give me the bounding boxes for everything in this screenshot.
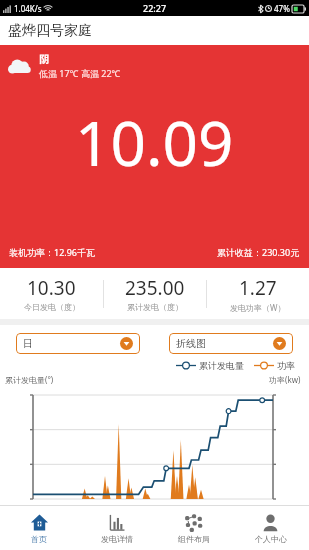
staticText: 发电详情 bbox=[101, 534, 133, 544]
staticText: 装机功率：12.96千瓦 bbox=[9, 246, 96, 258]
staticText: 累计发电量(°) bbox=[5, 374, 54, 385]
button[interactable]: 1.27 bbox=[207, 275, 309, 313]
staticText: 累计发电（度） bbox=[127, 302, 183, 312]
button[interactable]: 发电详情 bbox=[78, 506, 155, 550]
button[interactable]: 首页 bbox=[0, 506, 78, 550]
staticText: 组件布局 bbox=[178, 534, 210, 544]
staticText: 盛烨四号家庭 bbox=[8, 22, 92, 40]
staticText: 1.04K/s bbox=[14, 3, 42, 14]
staticText: 阴 bbox=[39, 53, 49, 66]
staticText: 累计收益：230.30元 bbox=[217, 246, 300, 258]
staticText: 功率(kw) bbox=[269, 374, 301, 385]
staticText: 折线图 bbox=[176, 337, 206, 350]
staticText: 发电功率（W） bbox=[230, 302, 286, 313]
staticText: 10.09 bbox=[75, 100, 234, 184]
staticText: 今日发电（度） bbox=[24, 302, 80, 312]
staticText: 功率 bbox=[277, 360, 295, 371]
staticText: 累计发电量 bbox=[199, 360, 244, 371]
staticText: 1.27 bbox=[239, 275, 277, 301]
button[interactable]: 10.30 bbox=[0, 275, 103, 312]
button[interactable]: 折线图 bbox=[169, 333, 293, 354]
staticText: 47% bbox=[274, 3, 290, 14]
staticText: 低温 17℃ 高温 22℃ bbox=[39, 67, 121, 79]
button[interactable]: 日 bbox=[16, 333, 140, 354]
staticText: 日 bbox=[23, 337, 33, 350]
staticText: 首页 bbox=[31, 534, 47, 544]
button[interactable]: 235.00 bbox=[104, 275, 206, 312]
staticText: 22:27 bbox=[143, 2, 167, 14]
button[interactable]: 组件布局 bbox=[155, 506, 232, 550]
button[interactable]: 个人中心 bbox=[232, 506, 309, 550]
staticText: 个人中心 bbox=[255, 534, 287, 544]
staticText: 235.00 bbox=[125, 275, 185, 301]
staticText: 10.30 bbox=[27, 275, 76, 301]
